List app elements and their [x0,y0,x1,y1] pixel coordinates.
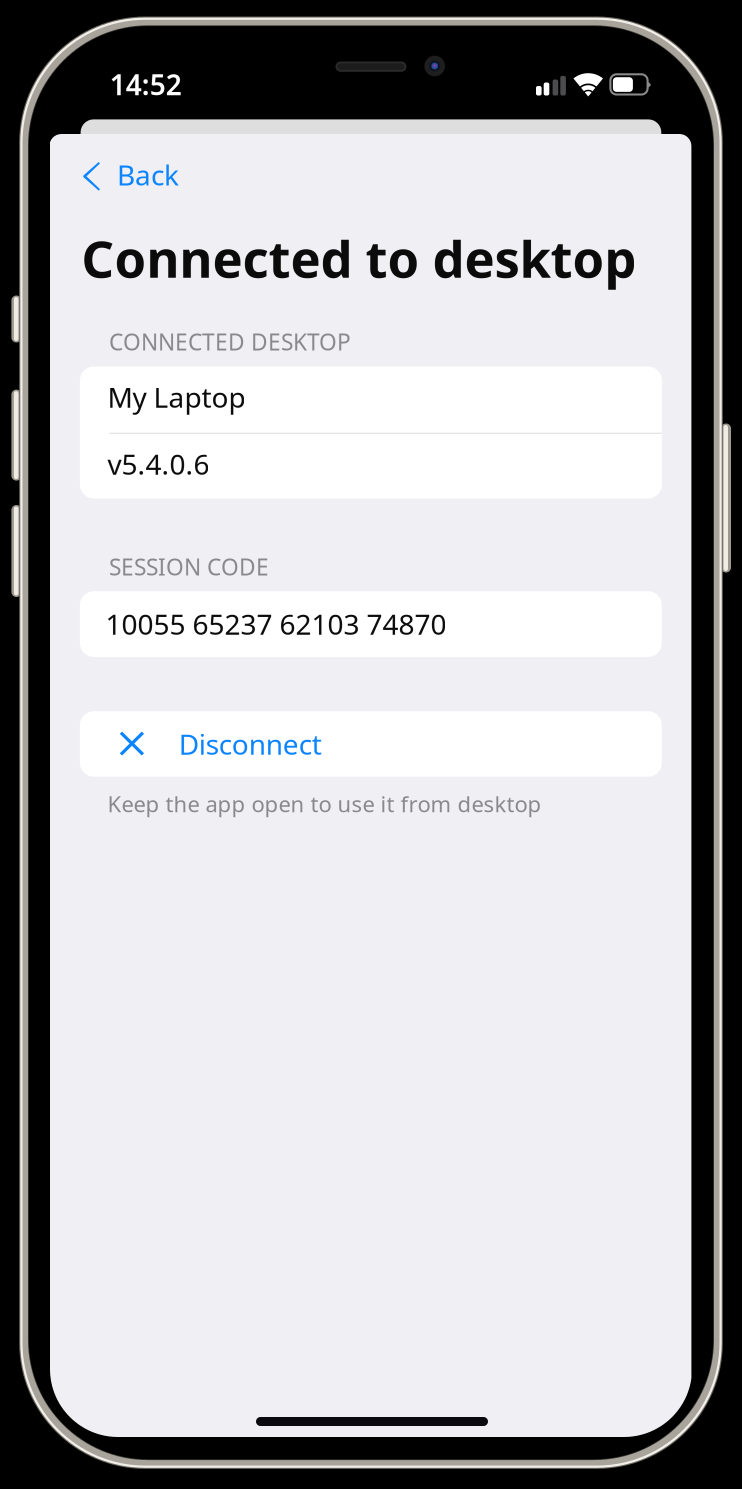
staticText: Connected to desktop [81,224,636,293]
staticText: SESSION CODE [109,551,269,582]
staticText: My Laptop [107,378,245,416]
staticText: Back [117,155,179,194]
staticText: Keep the app open to use it from desktop [107,789,541,819]
staticText: 10055 65237 62103 74870 [105,605,446,643]
staticText: CONNECTED DESKTOP [109,326,351,357]
button[interactable]: Disconnect [80,711,662,777]
staticText: Disconnect [179,725,322,763]
staticText: v5.4.0.6 [107,445,209,483]
button[interactable]: Back [49,153,219,201]
staticText: 14:52 [110,65,182,103]
